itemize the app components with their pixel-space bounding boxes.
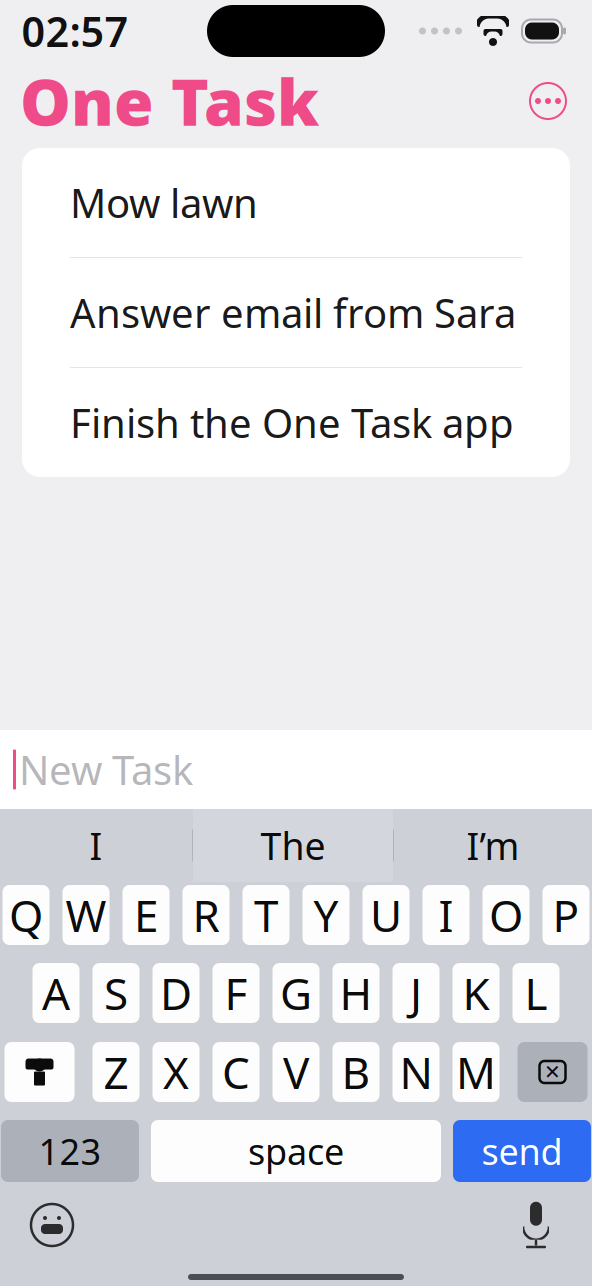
- staticText: X: [163, 1043, 189, 1101]
- button[interactable]: J: [392, 963, 439, 1023]
- staticText: J: [410, 964, 422, 1022]
- button[interactable]: send: [453, 1120, 591, 1182]
- staticText: T: [254, 886, 278, 944]
- button[interactable]: Answer email from Sara: [22, 258, 570, 367]
- staticText: I: [89, 821, 102, 870]
- button[interactable]: B: [332, 1042, 379, 1102]
- staticText: space: [248, 1127, 344, 1175]
- staticText: C: [222, 1043, 250, 1101]
- button[interactable]: N: [392, 1042, 439, 1102]
- staticText: 123: [38, 1127, 101, 1175]
- staticText: I: [438, 886, 453, 944]
- button[interactable]: G: [272, 963, 319, 1023]
- staticText: K: [462, 964, 489, 1022]
- staticText: A: [42, 964, 70, 1022]
- staticText: ✕: [544, 1061, 561, 1083]
- staticText: L: [524, 964, 547, 1022]
- staticText: R: [192, 886, 219, 944]
- button[interactable]: U: [362, 885, 409, 945]
- button[interactable]: Mow lawn: [22, 148, 570, 257]
- staticText: One Task: [20, 58, 319, 143]
- staticText: V: [283, 1043, 309, 1101]
- button[interactable]: T: [242, 885, 289, 945]
- button[interactable]: Y: [302, 885, 349, 945]
- staticText: New Task: [19, 743, 193, 796]
- button[interactable]: D: [152, 963, 199, 1023]
- staticText: B: [341, 1043, 370, 1101]
- staticText: H: [339, 964, 372, 1022]
- staticText: 02:57: [21, 4, 128, 58]
- button[interactable]: More options: [520, 73, 576, 129]
- staticText: E: [134, 886, 158, 944]
- button[interactable]: Z: [92, 1042, 139, 1102]
- button[interactable]: E: [122, 885, 169, 945]
- button[interactable]: W: [62, 885, 109, 945]
- button[interactable]: O: [482, 885, 529, 945]
- staticText: N: [399, 1043, 432, 1101]
- button[interactable]: Dictation: [506, 1195, 566, 1255]
- button[interactable]: C: [212, 1042, 259, 1102]
- button[interactable]: space: [151, 1120, 441, 1182]
- button[interactable]: Shift: [4, 1042, 74, 1102]
- staticText: M: [456, 1043, 496, 1101]
- button[interactable]: Emoji keyboard: [22, 1195, 82, 1255]
- button[interactable]: Q: [2, 885, 49, 945]
- staticText: Answer email from Sara: [70, 286, 516, 339]
- button[interactable]: F: [212, 963, 259, 1023]
- staticText: F: [224, 964, 247, 1022]
- button[interactable]: I: [0, 809, 192, 882]
- staticText: W: [65, 886, 106, 944]
- staticText: U: [370, 886, 402, 944]
- button[interactable]: 123: [1, 1120, 139, 1182]
- button[interactable]: Delete: [517, 1042, 587, 1102]
- staticText: Finish the One Task app: [70, 396, 514, 449]
- staticText: send: [481, 1127, 562, 1175]
- button[interactable]: Finish the One Task app: [22, 368, 570, 477]
- button[interactable]: I: [422, 885, 469, 945]
- button[interactable]: L: [512, 963, 559, 1023]
- button[interactable]: I’m: [394, 809, 592, 882]
- button[interactable]: M: [452, 1042, 499, 1102]
- staticText: The: [260, 821, 325, 870]
- button[interactable]: V: [272, 1042, 319, 1102]
- staticText: G: [280, 964, 312, 1022]
- staticText: S: [104, 964, 128, 1022]
- staticText: Y: [313, 886, 338, 944]
- staticText: Mow lawn: [70, 176, 258, 229]
- staticText: P: [552, 886, 579, 944]
- staticText: Z: [103, 1043, 128, 1101]
- button[interactable]: S: [92, 963, 139, 1023]
- button[interactable]: X: [152, 1042, 199, 1102]
- button[interactable]: K: [452, 963, 499, 1023]
- button[interactable]: R: [182, 885, 229, 945]
- staticText: I’m: [466, 821, 519, 870]
- staticText: D: [160, 964, 192, 1022]
- staticText: O: [489, 886, 523, 944]
- button[interactable]: P: [542, 885, 589, 945]
- button[interactable]: H: [332, 963, 379, 1023]
- button[interactable]: The: [193, 809, 393, 882]
- staticText: Q: [9, 886, 43, 944]
- button[interactable]: A: [32, 963, 79, 1023]
